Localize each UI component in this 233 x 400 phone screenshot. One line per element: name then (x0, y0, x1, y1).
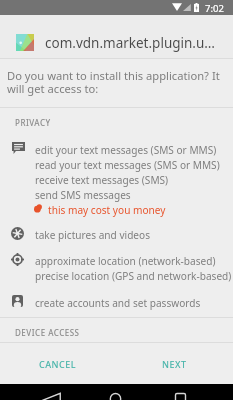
staticText: NEXT (162, 358, 187, 370)
staticText: approximate location (network-based) (35, 254, 233, 268)
staticText: this may cost you money (48, 203, 166, 217)
button[interactable]: Home (110, 393, 121, 400)
staticText: create accounts and set passwords (35, 296, 233, 310)
staticText: 7:02 (205, 2, 224, 15)
staticText: CANCEL (39, 358, 77, 370)
staticText: DEVICE ACCESS (15, 327, 80, 338)
button[interactable]: Back (42, 393, 61, 400)
staticText: receive text messages (SMS) (35, 173, 233, 187)
staticText: precise location (GPS and network-based) (35, 269, 233, 283)
staticText: read your text messages (SMS or MMS) (35, 158, 233, 172)
staticText: take pictures and videos (35, 228, 233, 242)
staticText: edit your text messages (SMS or MMS) (35, 143, 233, 157)
button[interactable]: Recent apps (175, 393, 186, 400)
button[interactable]: NEXT (116, 343, 233, 384)
staticText: PRIVACY (15, 117, 51, 128)
staticText: com.vdn.market.plugin.u… (45, 34, 225, 52)
staticText: Do you want to install this application?… (7, 68, 223, 96)
staticText: send SMS messages (35, 188, 233, 202)
button[interactable]: CANCEL (0, 343, 116, 384)
